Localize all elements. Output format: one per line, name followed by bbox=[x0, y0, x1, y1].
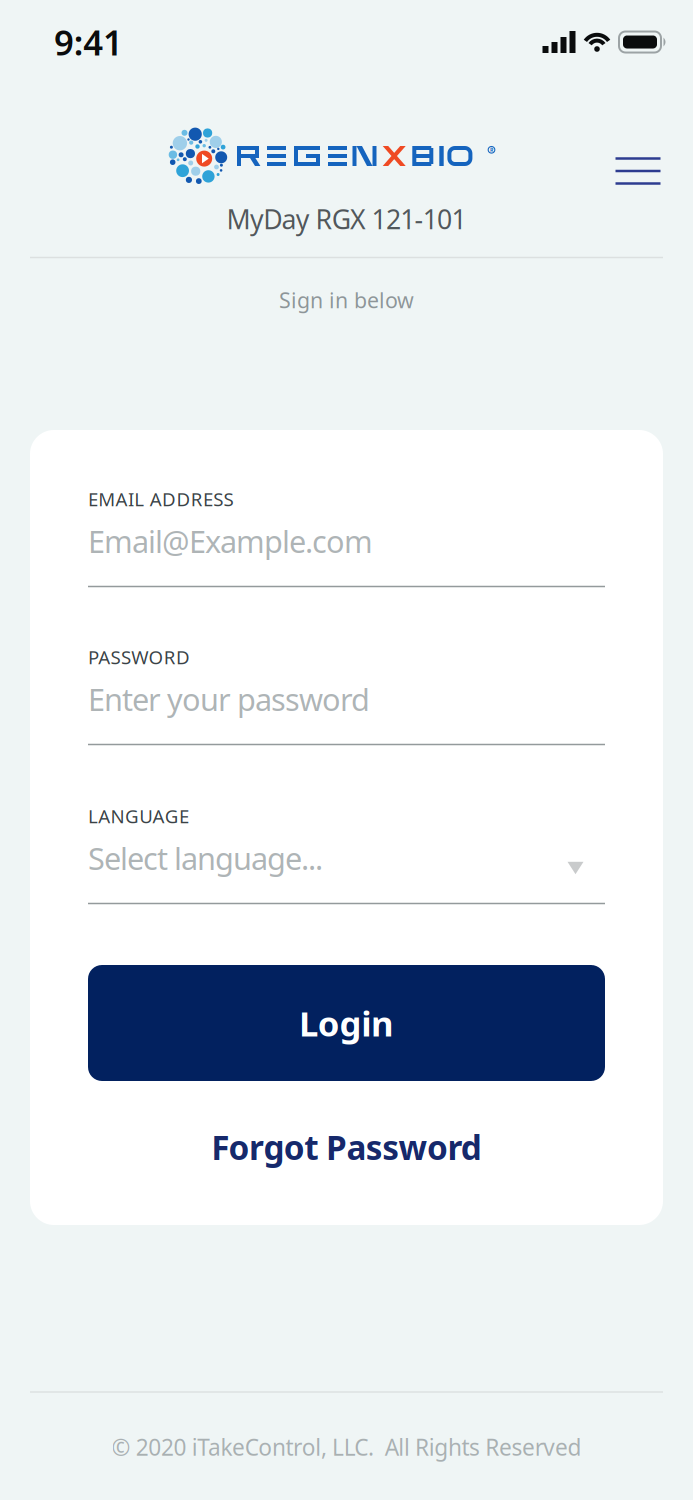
staticText: Sign in below bbox=[279, 286, 414, 314]
button[interactable]: Password bbox=[88, 646, 605, 758]
staticText: Enter your password bbox=[88, 679, 370, 719]
staticText: Select language... bbox=[88, 838, 323, 878]
staticText: MyDay RGX 121-101 bbox=[227, 201, 466, 237]
staticText: EMAIL ADDRESS bbox=[88, 487, 234, 511]
button[interactable]: Forgot Password bbox=[203, 1117, 490, 1177]
staticText: Login bbox=[299, 1000, 394, 1046]
button[interactable]: Login bbox=[88, 965, 605, 1081]
button[interactable]: Email address bbox=[88, 488, 605, 600]
staticText: PASSWORD bbox=[88, 645, 190, 669]
button[interactable]: Menu bbox=[605, 147, 670, 195]
staticText: Forgot Password bbox=[211, 1125, 482, 1169]
staticText: LANGUAGE bbox=[88, 804, 189, 828]
button[interactable]: Select language bbox=[88, 805, 605, 917]
staticText: Email@Example.com bbox=[88, 521, 373, 561]
staticText: R bbox=[490, 146, 493, 153]
staticText: © 2020 iTakeControl, LLC. All Rights Res… bbox=[111, 1432, 581, 1462]
staticText: 9:41 bbox=[54, 19, 123, 65]
